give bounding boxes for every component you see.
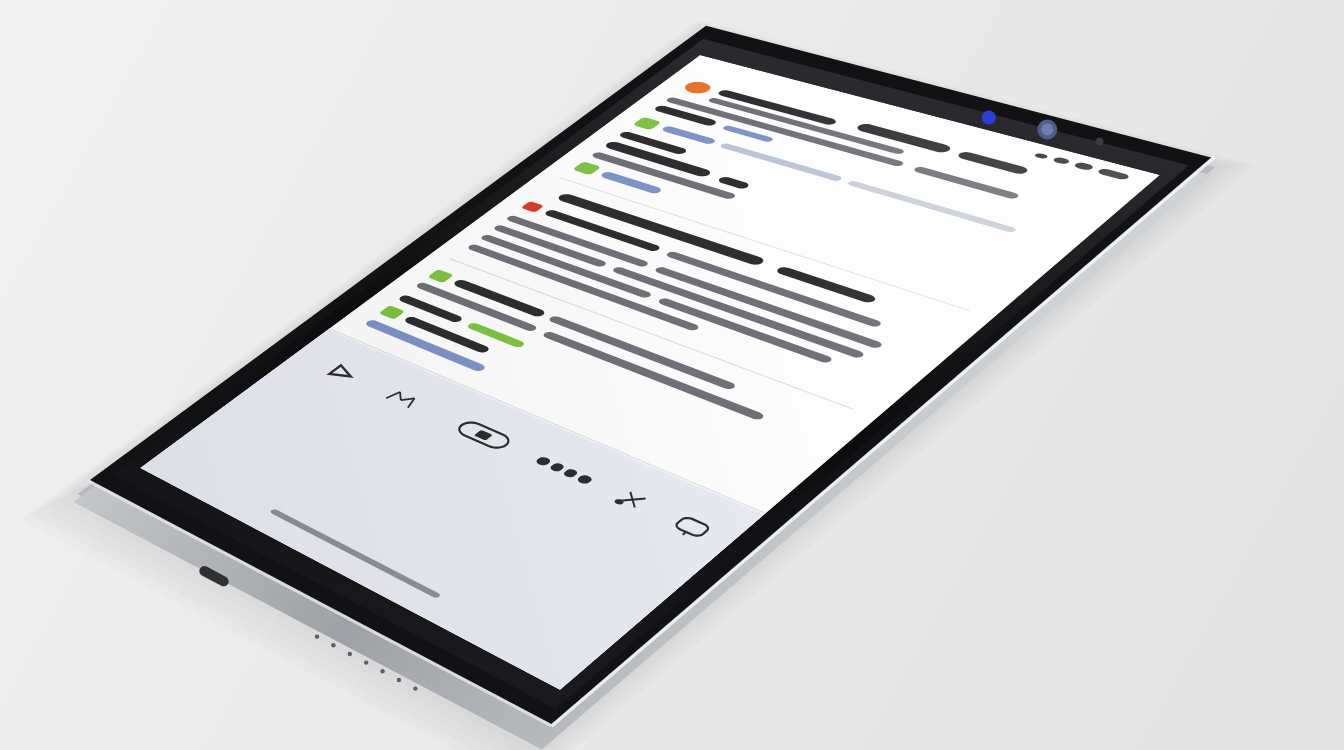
button[interactable]: Phone showing app screen — [0, 0, 1344, 750]
